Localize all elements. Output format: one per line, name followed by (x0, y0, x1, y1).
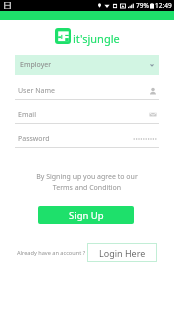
other: Open employer dropdown (150, 63, 154, 67)
staticText: Email (18, 110, 36, 120)
staticText: Sign Up (69, 209, 104, 222)
staticText: 12:49 (155, 1, 172, 10)
button[interactable]: Sign Up (38, 206, 134, 224)
staticText: it'sjungle (73, 31, 120, 46)
button[interactable]: Password (15, 134, 159, 148)
staticText: Terms and Condition (0, 183, 174, 193)
staticText: Employer (20, 60, 52, 70)
button[interactable]: Login Here (87, 243, 157, 262)
staticText: Already have an account ? (17, 249, 86, 257)
staticText: Login Here (99, 247, 146, 259)
button[interactable]: Employer (15, 55, 159, 75)
button[interactable]: Email (15, 110, 159, 124)
staticText: User Name (18, 86, 55, 96)
button[interactable]: User Name (15, 86, 159, 100)
staticText: By Signing up you agree to our (0, 172, 174, 182)
staticText: 79% (136, 1, 149, 10)
staticText: Password (18, 134, 50, 144)
